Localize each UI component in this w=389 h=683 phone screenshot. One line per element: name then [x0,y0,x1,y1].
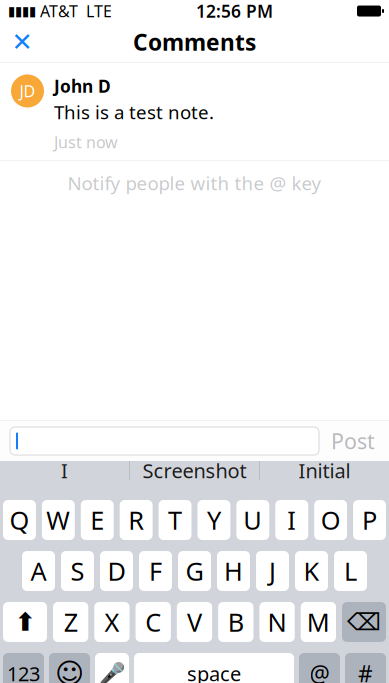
button[interactable]: D [100,551,133,591]
staticText: Y [207,503,221,537]
button[interactable]: Shift [3,602,47,642]
staticText: Post [331,427,375,455]
button[interactable]: 123 [3,653,44,683]
button[interactable]: S [61,551,94,591]
staticText: G [185,554,203,588]
staticText: Notify people with the @ key [67,171,321,195]
button[interactable]: V [177,602,212,642]
button[interactable]: # [345,653,386,683]
staticText: @ [309,658,329,683]
staticText: L [344,554,357,588]
button[interactable]: R [120,500,153,540]
staticText: space [187,660,241,683]
button[interactable]: M [301,602,336,642]
button[interactable]: H [217,551,250,591]
staticText: Z [64,605,78,639]
staticText: ⌫ [347,608,381,636]
staticText: 🎤 [98,661,125,683]
button[interactable]: G [178,551,211,591]
button[interactable]: Y [197,500,230,540]
staticText: Q [9,503,29,537]
button[interactable]: Delete [342,602,386,642]
staticText: E [90,503,104,537]
staticText: D [107,554,125,588]
staticText: A [30,554,46,588]
staticText: ✕ [11,28,32,56]
staticText: T [168,503,182,537]
staticText: R [128,503,144,537]
staticText: Screenshot [142,457,246,484]
button[interactable]: J [256,551,289,591]
button[interactable]: Close [0,22,44,62]
button[interactable]: L [334,551,367,591]
staticText: C [145,605,161,639]
button[interactable]: P [353,500,386,540]
button[interactable]: Initial [260,450,389,491]
button[interactable]: U [236,500,269,540]
button[interactable]: space [134,653,294,683]
button[interactable]: Z [53,602,88,642]
staticText: X [104,605,119,639]
staticText: I [287,503,296,537]
staticText: Comments [133,27,256,57]
button[interactable]: Screenshot [130,450,259,491]
staticText: ▮▮▮▮ [8,3,36,18]
button[interactable]: F [139,551,172,591]
button[interactable]: Q [3,500,36,540]
button[interactable]: K [295,551,328,591]
staticText: AT&T LTE [36,0,112,22]
button[interactable]: Dictate [95,653,129,683]
staticText: 123 [7,660,40,683]
staticText: B [228,605,244,639]
staticText: S [70,554,84,588]
staticText: ⬆ [14,608,35,636]
staticText: U [243,503,262,537]
staticText: I [61,457,68,484]
staticText: ☺ [55,658,84,683]
staticText: W [46,503,70,537]
button[interactable]: A [22,551,55,591]
staticText: Initial [298,457,350,484]
button[interactable]: Emoji [49,653,90,683]
staticText: J [269,554,276,588]
staticText: # [358,658,373,683]
button[interactable]: Post [319,424,387,458]
staticText: P [362,503,377,537]
button[interactable]: E [81,500,114,540]
button[interactable]: I [275,500,308,540]
staticText: O [321,503,341,537]
staticText: K [303,554,319,588]
button[interactable]: N [259,602,295,642]
button[interactable]: W [42,500,75,540]
staticText: Just now [54,131,118,152]
staticText: H [224,554,243,588]
button[interactable]: O [314,500,347,540]
staticText: N [268,605,287,639]
staticText: JD [19,80,35,102]
staticText: This is a test note. [54,99,214,124]
staticText: F [149,554,162,588]
button[interactable]: T [159,500,191,540]
staticText: V [187,605,202,639]
button[interactable]: I [0,450,129,491]
staticText: M [307,605,330,639]
button[interactable]: B [218,602,253,642]
button[interactable]: C [136,602,171,642]
staticText: John D [54,74,111,97]
button[interactable]: @ [299,653,340,683]
button[interactable]: X [94,602,130,642]
staticText: 12:56 PM [196,0,273,22]
